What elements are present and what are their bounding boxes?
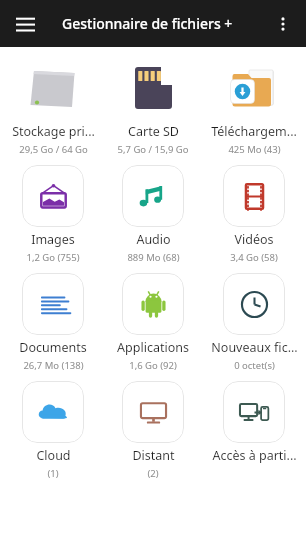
staticText: Téléchargem... — [211, 123, 297, 140]
button[interactable]: Applications — [105, 266, 201, 374]
button[interactable]: Open navigation drawer — [6, 5, 44, 43]
button[interactable]: Nouveaux fic... — [206, 266, 302, 374]
staticText: Images — [31, 231, 75, 248]
staticText: Documents — [19, 339, 87, 356]
button[interactable]: Vidéos — [206, 158, 302, 266]
staticText: Nouveaux fic... — [211, 339, 298, 356]
staticText: Carte SD — [128, 123, 179, 140]
button[interactable]: Distant — [105, 374, 201, 482]
staticText: 1,6 Go (92) — [129, 359, 177, 372]
staticText: Cloud — [36, 447, 71, 464]
button[interactable]: Audio — [105, 158, 201, 266]
staticText: 26,7 Mo (138) — [23, 359, 84, 372]
staticText: Gestionnaire de fichiers + — [62, 14, 233, 33]
button[interactable]: Téléchargem... — [206, 50, 302, 158]
staticText: 5,7 Go / 15,9 Go — [117, 143, 189, 156]
staticText: 3,4 Go (58) — [230, 251, 278, 264]
staticText: Applications — [117, 339, 189, 356]
button[interactable]: Accès à parti... — [206, 374, 302, 482]
button[interactable]: Images — [5, 158, 101, 266]
button[interactable]: Carte SD — [105, 50, 201, 158]
button[interactable]: More options — [265, 6, 301, 42]
button[interactable]: Stockage pri... — [5, 50, 101, 158]
staticText: (1) — [47, 467, 59, 480]
staticText: 425 Mo (43) — [228, 143, 281, 156]
staticText: Vidéos — [234, 231, 274, 248]
staticText: Accès à parti... — [212, 447, 297, 464]
staticText: 29,5 Go / 64 Go — [19, 143, 88, 156]
staticText: (2) — [147, 467, 159, 480]
button[interactable]: Cloud — [5, 374, 101, 482]
staticText: 0 octet(s) — [234, 359, 275, 372]
staticText: 889 Mo (68) — [127, 251, 180, 264]
staticText: Distant — [132, 447, 175, 464]
staticText: Audio — [136, 231, 171, 248]
button[interactable]: Documents — [5, 266, 101, 374]
staticText: 1,2 Go (755) — [26, 251, 80, 264]
staticText: Stockage pri... — [12, 123, 95, 140]
